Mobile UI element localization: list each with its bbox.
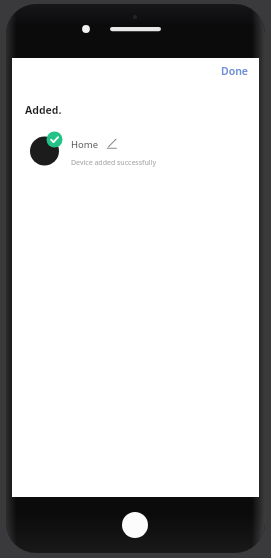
button[interactable]: Home: [12, 130, 259, 168]
staticText: Done: [221, 64, 249, 78]
staticText: Added.: [25, 103, 62, 117]
button[interactable]: Done: [211, 61, 259, 81]
staticText: Home: [71, 138, 99, 151]
button[interactable]: Rename device: [105, 137, 119, 151]
button[interactable]: Home button: [122, 512, 148, 538]
staticText: Device added successfully: [71, 158, 156, 168]
